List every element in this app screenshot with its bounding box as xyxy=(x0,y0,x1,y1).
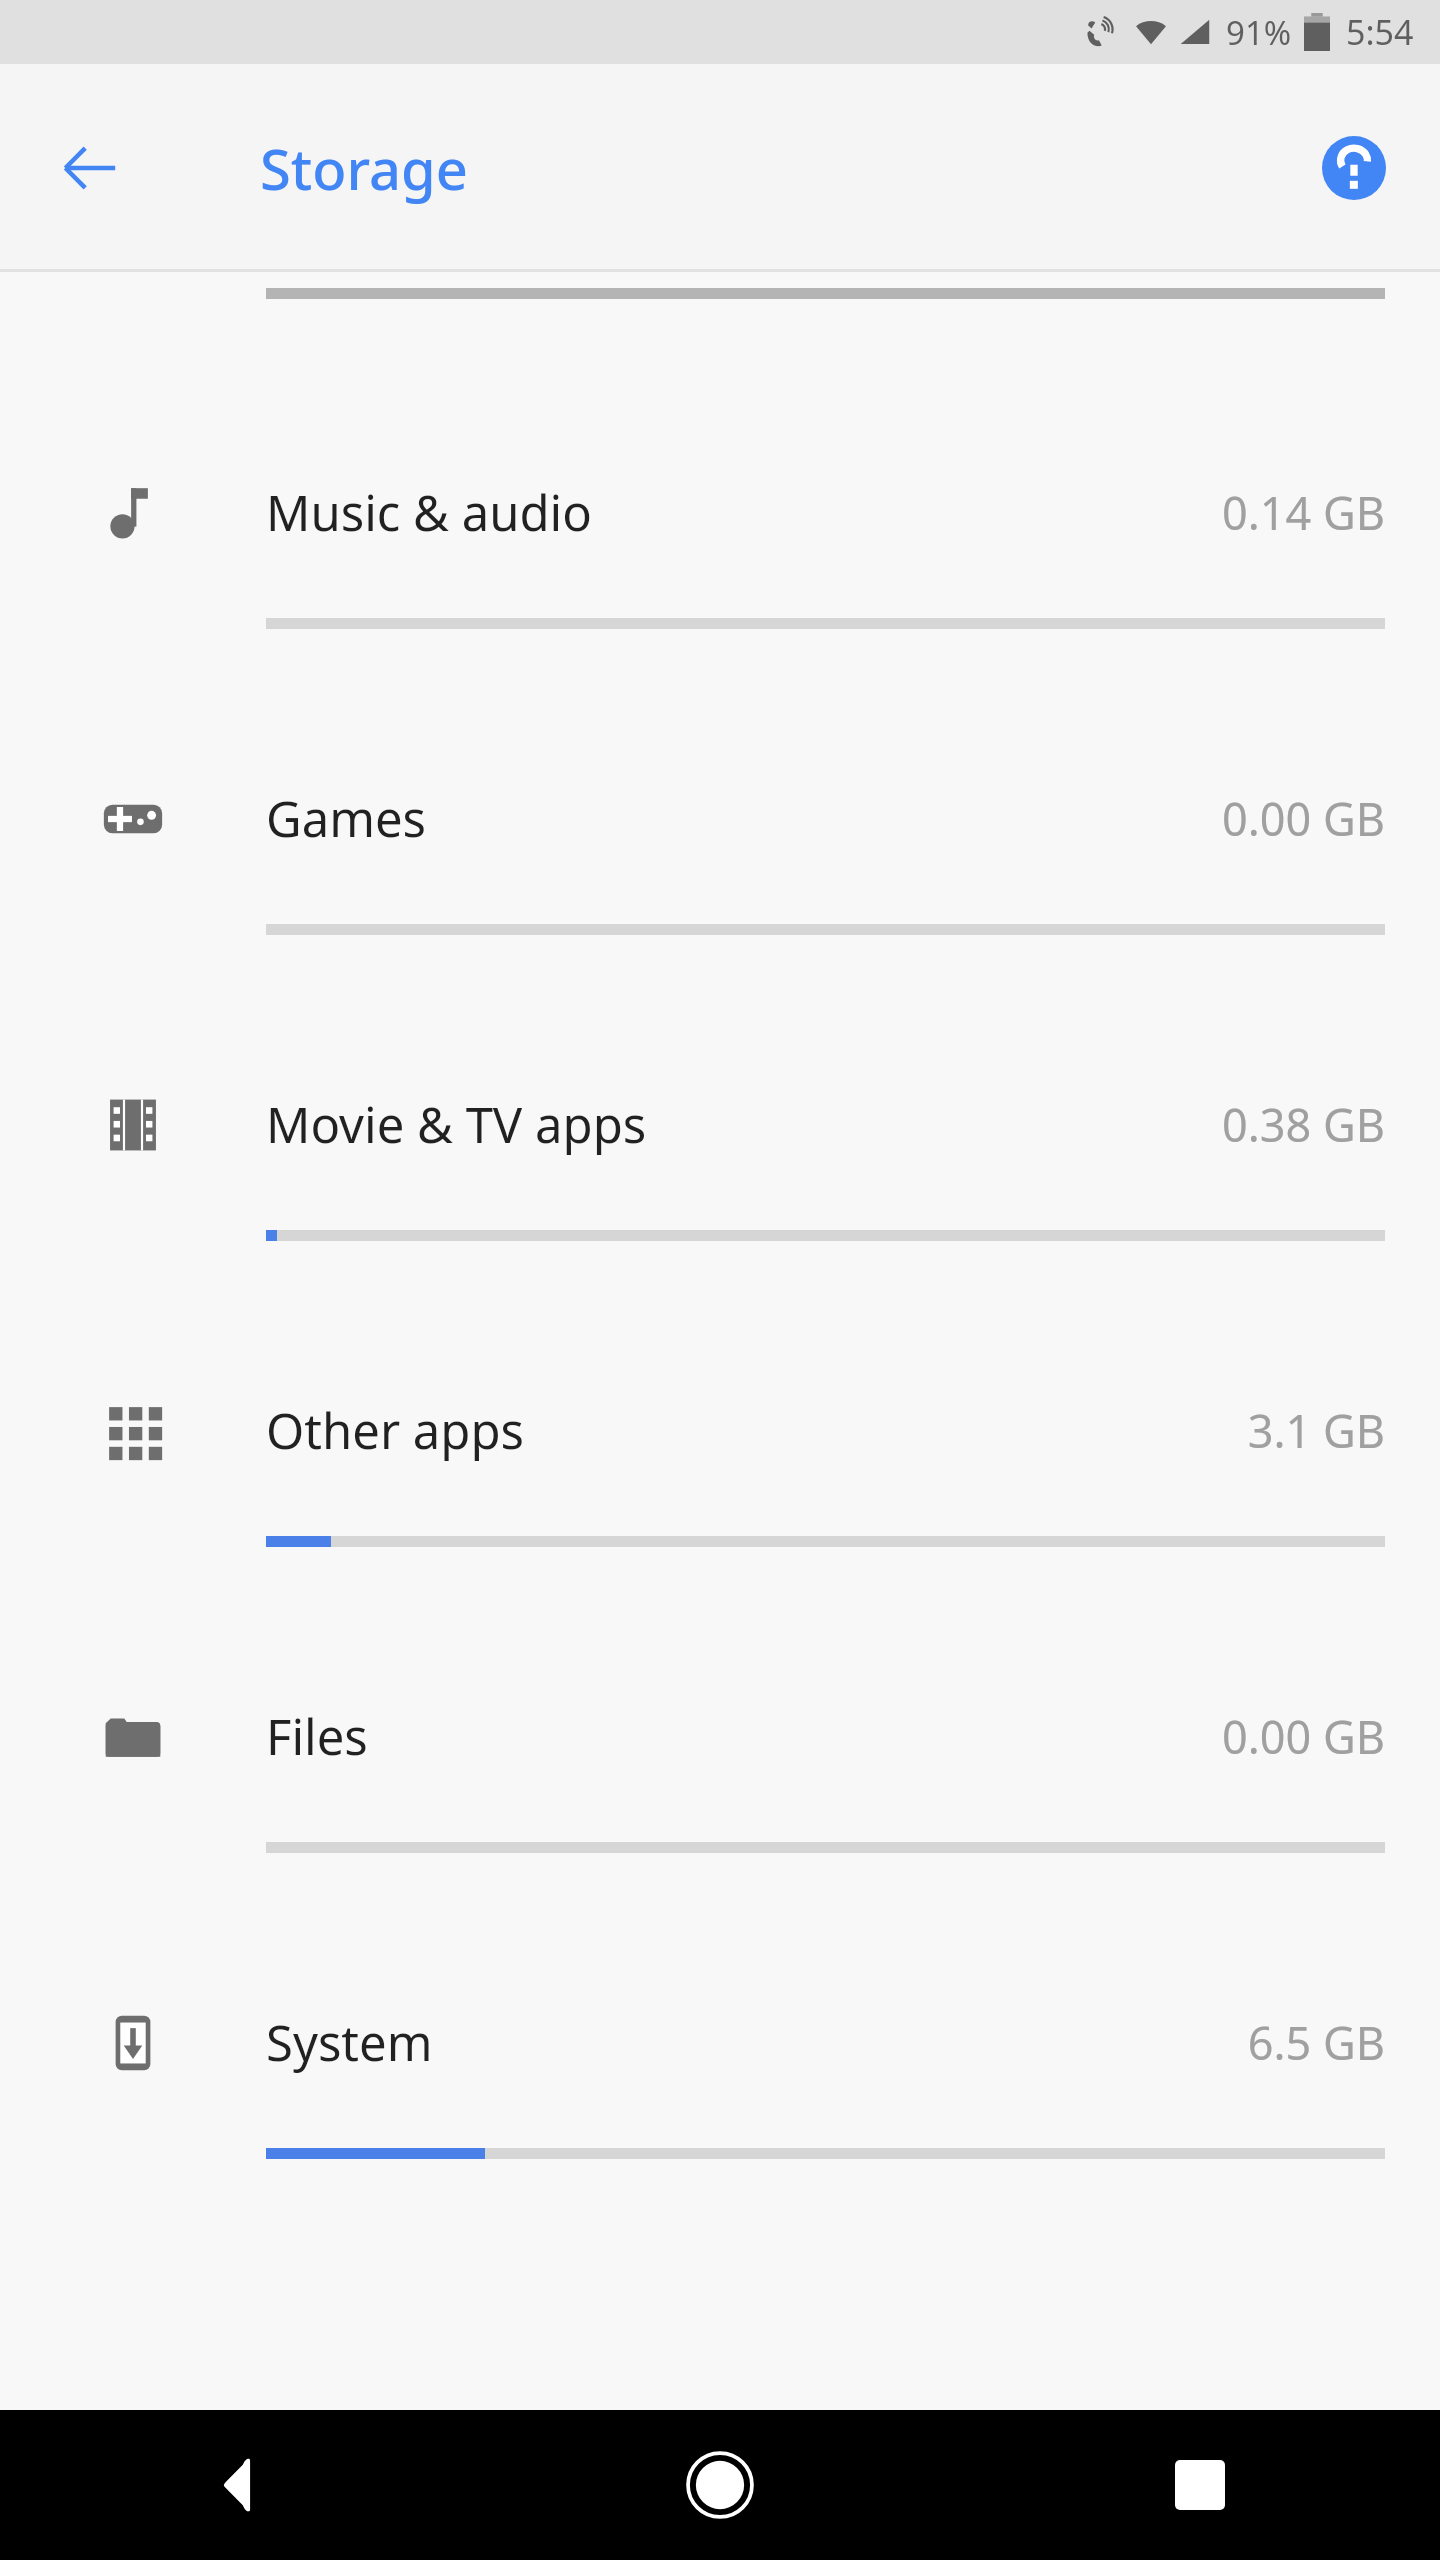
staticText: 6.5 GB xyxy=(1247,2012,1385,2073)
staticText: Music & audio xyxy=(266,479,592,546)
button[interactable]: Home xyxy=(480,2410,960,2560)
button[interactable]: Games xyxy=(0,629,1440,935)
staticText: 0.00 GB xyxy=(1222,788,1385,849)
staticText: Other apps xyxy=(266,1397,525,1464)
staticText: 0.00 GB xyxy=(1222,1706,1385,1767)
staticText: Movie & TV apps xyxy=(266,1091,647,1158)
staticText: System xyxy=(266,2009,433,2076)
button[interactable]: Help xyxy=(1304,118,1404,218)
button[interactable]: Recent apps xyxy=(960,2410,1440,2560)
staticText: 0.38 GB xyxy=(1222,1094,1385,1155)
button[interactable]: Files xyxy=(0,1547,1440,1853)
staticText: Games xyxy=(266,785,427,852)
button[interactable]: Back xyxy=(0,2410,480,2560)
button[interactable]: Movie & TV apps xyxy=(0,935,1440,1241)
button[interactable]: Music & audio xyxy=(0,299,1440,629)
staticText: Storage xyxy=(260,130,468,206)
staticText: 5:54 xyxy=(1346,9,1414,55)
staticText: 0.14 GB xyxy=(1222,482,1385,543)
button[interactable]: System xyxy=(0,1853,1440,2159)
button[interactable]: Other apps xyxy=(0,1241,1440,1547)
button[interactable]: Back xyxy=(38,116,142,220)
staticText: 91% xyxy=(1226,10,1292,55)
staticText: Files xyxy=(266,1703,368,1770)
staticText: 3.1 GB xyxy=(1247,1400,1385,1461)
